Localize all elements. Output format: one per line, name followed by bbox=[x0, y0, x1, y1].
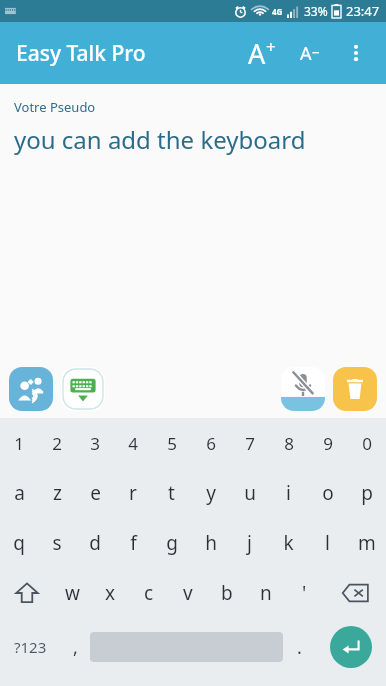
button[interactable]: x bbox=[91, 568, 129, 618]
button[interactable]: Show keyboard bbox=[61, 367, 105, 411]
staticText: 9 bbox=[323, 432, 333, 455]
staticText: A bbox=[248, 35, 266, 72]
staticText: n bbox=[260, 580, 272, 606]
staticText: a bbox=[14, 480, 25, 506]
staticText: 7 bbox=[245, 432, 255, 455]
button[interactable]: 6 bbox=[191, 418, 230, 468]
staticText: 8 bbox=[284, 432, 294, 455]
button[interactable]: a bbox=[0, 468, 38, 518]
button[interactable]: r bbox=[114, 468, 152, 518]
staticText: e bbox=[90, 480, 101, 506]
staticText: u bbox=[244, 480, 256, 506]
staticText: Easy Talk Pro bbox=[16, 39, 146, 68]
staticText: 3 bbox=[90, 432, 100, 455]
staticText: q bbox=[13, 530, 25, 556]
staticText: 6 bbox=[206, 432, 216, 455]
staticText: t bbox=[168, 480, 175, 506]
staticText: x bbox=[105, 580, 116, 606]
button[interactable]: ?123 bbox=[0, 618, 61, 676]
button[interactable]: Add contact bbox=[9, 367, 53, 411]
staticText: i bbox=[286, 480, 291, 506]
button[interactable]: v bbox=[168, 568, 207, 618]
button[interactable]: t bbox=[152, 468, 191, 518]
button[interactable]: , bbox=[61, 618, 90, 676]
button[interactable]: i bbox=[269, 468, 308, 518]
button[interactable]: p bbox=[347, 468, 386, 518]
button[interactable]: w bbox=[53, 568, 91, 618]
staticText: , bbox=[73, 635, 78, 660]
staticText: b bbox=[221, 580, 233, 606]
button[interactable]: 3 bbox=[76, 418, 114, 468]
staticText: f bbox=[130, 530, 137, 556]
button[interactable]: 0 bbox=[347, 418, 386, 468]
button[interactable]: d bbox=[76, 518, 114, 568]
staticText: w bbox=[65, 580, 80, 606]
staticText: m bbox=[358, 530, 376, 556]
button[interactable]: j bbox=[230, 518, 269, 568]
button[interactable]: q bbox=[0, 518, 38, 568]
button[interactable]: Enter bbox=[315, 618, 386, 676]
staticText: ?123 bbox=[14, 637, 47, 657]
button[interactable]: u bbox=[230, 468, 269, 518]
staticText: j bbox=[247, 530, 252, 556]
button[interactable]: 4 bbox=[114, 418, 152, 468]
button[interactable]: Microphone off bbox=[281, 367, 325, 411]
staticText: z bbox=[53, 480, 62, 506]
button[interactable]: 2 bbox=[38, 418, 76, 468]
staticText: 4G bbox=[272, 6, 283, 17]
staticText: 1 bbox=[14, 432, 24, 455]
button[interactable]: f bbox=[114, 518, 152, 568]
button[interactable]: 7 bbox=[230, 418, 269, 468]
button[interactable]: ' bbox=[285, 568, 324, 618]
staticText: 4 bbox=[128, 432, 138, 455]
button[interactable]: n bbox=[246, 568, 285, 618]
button[interactable]: Backspace bbox=[324, 568, 386, 618]
staticText: p bbox=[361, 480, 373, 506]
button[interactable]: l bbox=[308, 518, 347, 568]
staticText: y bbox=[206, 480, 216, 506]
staticText: g bbox=[166, 530, 178, 556]
button[interactable]: m bbox=[347, 518, 386, 568]
staticText: ' bbox=[302, 580, 307, 606]
button[interactable]: s bbox=[38, 518, 76, 568]
staticText: + bbox=[266, 35, 276, 58]
staticText: Votre Pseudo bbox=[14, 98, 96, 116]
staticText: d bbox=[89, 530, 101, 556]
button[interactable]: 1 bbox=[0, 418, 38, 468]
button[interactable]: b bbox=[207, 568, 246, 618]
button[interactable]: z bbox=[38, 468, 76, 518]
button[interactable]: Increase text size bbox=[238, 29, 286, 77]
button[interactable]: g bbox=[152, 518, 191, 568]
staticText: – bbox=[312, 41, 320, 61]
staticText: 2 bbox=[52, 432, 62, 455]
button[interactable]: k bbox=[269, 518, 308, 568]
button[interactable]: Delete bbox=[333, 367, 377, 411]
button[interactable]: Decrease text size bbox=[286, 29, 334, 77]
staticText: c bbox=[144, 580, 154, 606]
button[interactable]: c bbox=[129, 568, 168, 618]
staticText: 5 bbox=[167, 432, 177, 455]
staticText: you can add the keyboard bbox=[14, 123, 306, 156]
button[interactable]: o bbox=[308, 468, 347, 518]
staticText: h bbox=[205, 530, 217, 556]
button[interactable]: h bbox=[191, 518, 230, 568]
button[interactable]: More options bbox=[334, 31, 378, 75]
staticText: . bbox=[297, 635, 302, 660]
staticText: 23:47 bbox=[346, 2, 380, 20]
button[interactable]: e bbox=[76, 468, 114, 518]
button[interactable]: 9 bbox=[308, 418, 347, 468]
button[interactable]: . bbox=[283, 618, 315, 676]
staticText: 0 bbox=[362, 432, 372, 455]
staticText: k bbox=[283, 530, 294, 556]
staticText: l bbox=[325, 530, 330, 556]
button[interactable]: Shift bbox=[0, 568, 53, 618]
button[interactable]: 8 bbox=[269, 418, 308, 468]
staticText: A bbox=[300, 41, 312, 66]
staticText: o bbox=[322, 480, 334, 506]
staticText: r bbox=[129, 480, 137, 506]
button[interactable]: 5 bbox=[152, 418, 191, 468]
staticText: s bbox=[52, 530, 62, 556]
button[interactable]: y bbox=[191, 468, 230, 518]
staticText: v bbox=[183, 580, 193, 606]
